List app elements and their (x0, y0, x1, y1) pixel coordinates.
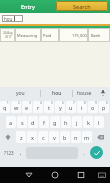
button[interactable] (90, 146, 103, 159)
button[interactable]: Entry (0, 0, 55, 13)
button[interactable]: . (79, 147, 88, 159)
button[interactable]: 24/Aug (0, 28, 15, 42)
staticText: . (83, 149, 85, 157)
button[interactable]: c (38, 131, 48, 143)
button[interactable]: r (33, 101, 43, 113)
button[interactable]: hou (2, 15, 23, 22)
staticText: 8 (84, 101, 86, 105)
button[interactable]: n (71, 131, 81, 143)
button[interactable]: f (39, 116, 49, 128)
button[interactable] (42, 167, 68, 183)
button[interactable] (93, 131, 107, 143)
button[interactable]: d (28, 116, 38, 128)
staticText: 175,000 (72, 33, 87, 38)
staticText: l (98, 119, 100, 126)
button[interactable]: hou (41, 87, 72, 99)
staticText: w (14, 104, 19, 111)
staticText: 6 (62, 101, 64, 105)
button[interactable]: z (16, 131, 26, 143)
staticText: t (48, 104, 50, 111)
staticText: Bank (91, 33, 101, 38)
staticText: i (81, 104, 83, 111)
staticText: hou (4, 16, 13, 22)
staticText: r (37, 104, 40, 111)
staticText: n (74, 134, 78, 141)
staticText: j (76, 119, 78, 126)
staticText: 1 (7, 101, 9, 105)
staticText: hou (52, 90, 62, 97)
button[interactable]: , (16, 147, 25, 159)
staticText: a (9, 119, 13, 126)
staticText: house (77, 90, 92, 97)
staticText: h (64, 119, 68, 126)
button[interactable] (1, 131, 15, 143)
button[interactable]: h (61, 116, 71, 128)
button[interactable]: l (94, 116, 104, 128)
button[interactable]: t (44, 101, 54, 113)
staticText: u (69, 104, 73, 111)
button[interactable]: u (66, 101, 76, 113)
staticText: 7 (73, 101, 75, 105)
button[interactable] (16, 167, 42, 183)
staticText: ?123 (4, 150, 14, 156)
staticText: o (91, 104, 95, 111)
button[interactable]: Bank (88, 28, 110, 42)
button[interactable]: e (22, 101, 32, 113)
staticText: e (25, 104, 29, 111)
button[interactable]: x (27, 131, 37, 143)
staticText: 3 (29, 101, 31, 105)
staticText: 9 (95, 101, 97, 105)
button[interactable]: o (88, 101, 98, 113)
button[interactable]: 175,000 (59, 28, 88, 42)
button[interactable]: a (6, 116, 16, 128)
button[interactable] (68, 167, 94, 183)
button[interactable]: k (83, 116, 93, 128)
staticText: c (42, 134, 45, 141)
staticText: b (63, 134, 67, 141)
button[interactable]: ?123 (1, 147, 16, 159)
staticText: v (53, 134, 56, 141)
button[interactable]: g (50, 116, 60, 128)
staticText: 2 (18, 101, 20, 105)
button[interactable]: house (73, 87, 96, 99)
button[interactable]: you (0, 87, 40, 99)
staticText: 4 (40, 101, 42, 105)
staticText: s (21, 119, 24, 126)
staticText: m (84, 134, 90, 141)
button[interactable]: b (60, 131, 70, 143)
button[interactable]: s (17, 116, 27, 128)
staticText: g (53, 119, 57, 126)
button[interactable]: i (77, 101, 87, 113)
staticText: Paid (43, 33, 52, 38)
staticText: you (16, 90, 25, 97)
staticText: Entry (21, 3, 35, 10)
button[interactable]: y (55, 101, 65, 113)
button[interactable]: m (82, 131, 92, 143)
button[interactable]: q (0, 101, 10, 113)
button[interactable]: Search (56, 1, 108, 11)
staticText: q (3, 104, 7, 111)
staticText: 24/Aug (3, 31, 13, 35)
button[interactable]: v (49, 131, 59, 143)
staticText: Measuring (17, 33, 38, 38)
staticText: Search (73, 3, 91, 10)
button[interactable] (96, 87, 110, 99)
staticText: y (59, 104, 62, 111)
button[interactable] (94, 167, 110, 183)
staticText: 5 (51, 101, 53, 105)
staticText: , (20, 149, 22, 157)
staticText: 0 (106, 101, 108, 105)
staticText: d (31, 119, 35, 126)
staticText: z (20, 134, 23, 141)
staticText: f (43, 119, 45, 126)
staticText: k (87, 119, 90, 126)
staticText: 2017 (5, 35, 12, 39)
staticText: x (31, 134, 34, 141)
button[interactable]: p (99, 101, 109, 113)
button[interactable]: Paid (41, 28, 59, 42)
button[interactable]: Measuring (15, 28, 41, 42)
button[interactable]: j (72, 116, 82, 128)
button[interactable]: w (11, 101, 21, 113)
staticText: p (102, 104, 106, 111)
